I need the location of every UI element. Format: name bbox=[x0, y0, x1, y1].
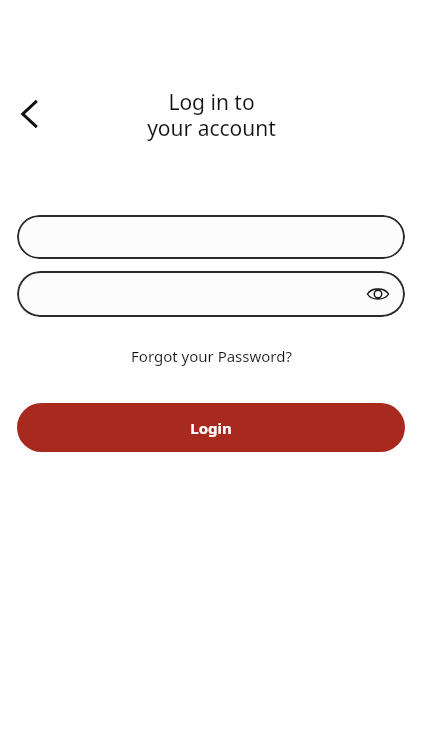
staticText: Login bbox=[190, 418, 232, 438]
staticText: Log in to your account bbox=[147, 88, 276, 142]
button[interactable]: Email field bbox=[17, 215, 405, 259]
button[interactable]: Back bbox=[6, 89, 54, 139]
staticText: Forgot your Password? bbox=[131, 346, 292, 366]
button[interactable]: Forgot your Password? bbox=[123, 344, 300, 368]
button[interactable]: Login bbox=[17, 403, 405, 452]
button[interactable]: Show password bbox=[361, 277, 395, 311]
button[interactable]: Password field bbox=[17, 271, 405, 317]
